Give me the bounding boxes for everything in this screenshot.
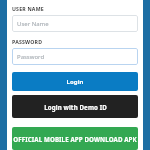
staticText: User Name xyxy=(17,20,49,28)
staticText: OFFICIAL MOBILE APP DOWNLOAD APK xyxy=(13,135,137,143)
button[interactable]: Login with Demo ID xyxy=(12,95,138,118)
staticText: Login with Demo ID xyxy=(44,103,107,111)
staticText: Login xyxy=(66,78,84,86)
button[interactable]: User Name xyxy=(12,15,138,32)
button[interactable]: OFFICIAL MOBILE APP DOWNLOAD APK xyxy=(12,127,138,150)
staticText: Password xyxy=(17,53,45,61)
button[interactable]: Password xyxy=(12,48,138,65)
staticText: PASSWORD xyxy=(12,38,43,45)
staticText: USER NAME xyxy=(12,5,44,12)
button[interactable]: Login xyxy=(12,72,138,91)
